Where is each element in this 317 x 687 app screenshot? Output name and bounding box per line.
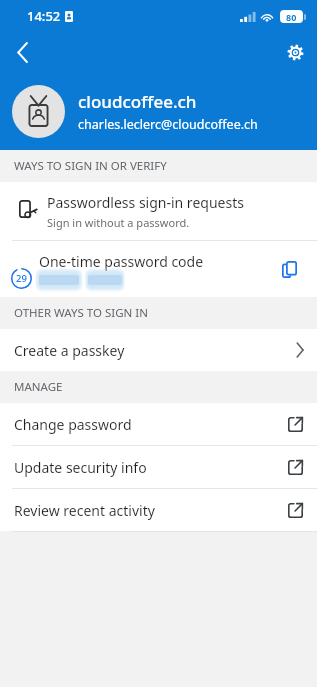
staticText: Passwordless sign-in requests — [47, 193, 244, 212]
staticText: OTHER WAYS TO SIGN IN — [14, 305, 148, 321]
button[interactable]: Back — [0, 32, 44, 72]
staticText: cloudcoffee.ch — [78, 90, 197, 113]
staticText: 29 — [16, 272, 27, 285]
button[interactable]: Change password — [0, 403, 317, 445]
staticText: 80 — [286, 11, 297, 23]
staticText: 14:52 — [27, 7, 61, 25]
button[interactable]: Review recent activity — [0, 489, 317, 531]
button[interactable]: Copy code — [273, 253, 305, 285]
staticText: One-time password code — [39, 252, 204, 271]
button[interactable]: 29 — [0, 241, 317, 297]
staticText: Update security info — [14, 458, 288, 477]
staticText: Review recent activity — [14, 501, 288, 520]
staticText: WAYS TO SIGN IN OR VERIFY — [14, 158, 167, 174]
button[interactable]: Update security info — [0, 446, 317, 488]
staticText: Change password — [14, 415, 288, 434]
staticText: Sign in without a password. — [47, 215, 190, 230]
staticText: Create a passkey — [14, 341, 296, 360]
button[interactable]: Settings — [273, 32, 317, 72]
button[interactable]: Create a passkey — [0, 329, 317, 371]
button[interactable]: Passwordless sign-in requests — [0, 182, 317, 240]
staticText: charles.leclerc@cloudcoffee.ch — [78, 116, 258, 133]
staticText: MANAGE — [14, 379, 63, 395]
